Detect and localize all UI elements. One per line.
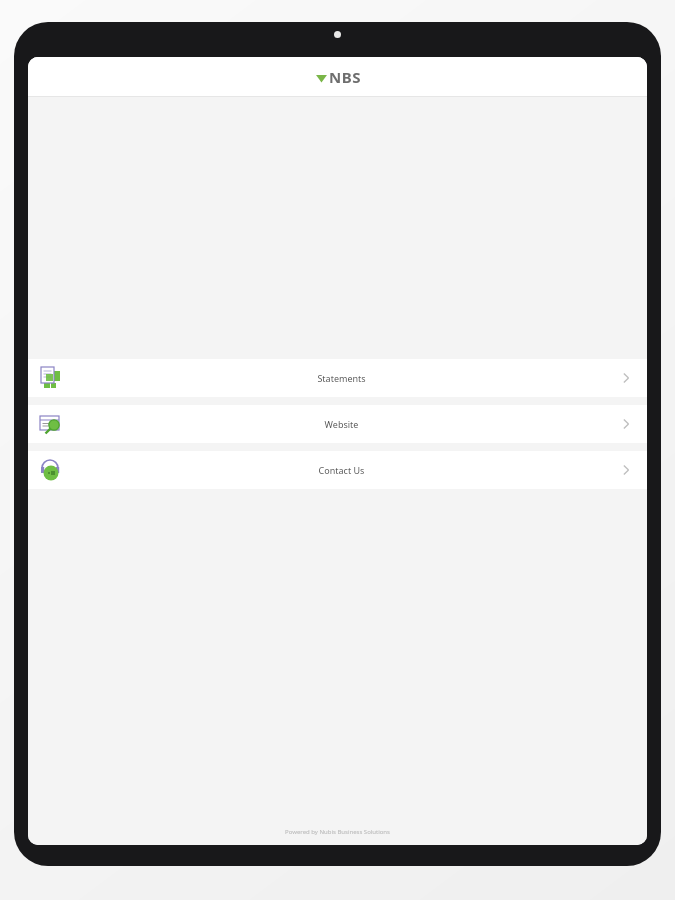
staticText: NBS — [329, 67, 361, 87]
button[interactable]: Website — [28, 405, 647, 443]
staticText: Contact Us — [66, 464, 617, 476]
button[interactable]: Statements — [28, 359, 647, 397]
staticText: Powered by Nubis Business Solutions — [285, 828, 390, 836]
staticText: Website — [66, 418, 617, 430]
button[interactable]: Contact Us — [28, 451, 647, 489]
staticText: Statements — [66, 372, 617, 384]
